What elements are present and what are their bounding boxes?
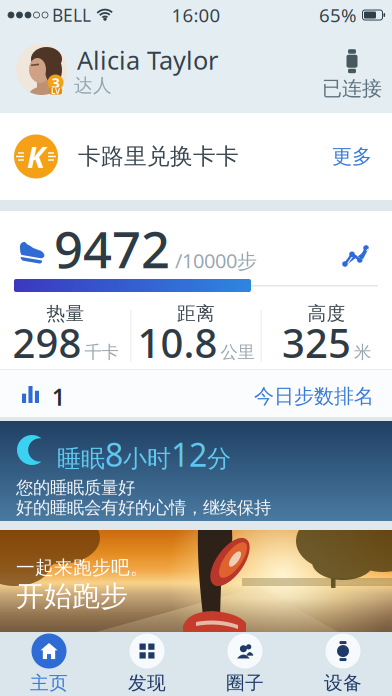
button[interactable]: 设备 (294, 632, 392, 696)
staticText: Alicia Taylor (77, 43, 218, 77)
staticText: 今日步数排名 (254, 384, 374, 409)
staticText: 设备 (324, 671, 362, 694)
staticText: 好的睡眠会有好的心情，继续保持 (16, 497, 271, 518)
button[interactable]: 睡眠详情 (0, 421, 392, 521)
staticText: 开始跑步 (16, 579, 128, 613)
staticText: LV (51, 86, 60, 96)
staticText: 分 (207, 444, 231, 473)
staticText: 睡眠 (57, 444, 105, 473)
button[interactable]: K (0, 113, 392, 200)
staticText: 圈子 (226, 671, 264, 694)
button[interactable]: 个人资料 (0, 30, 260, 113)
staticText: 10.8 (137, 316, 217, 369)
staticText: 距离 (177, 302, 215, 325)
staticText: K (27, 137, 45, 176)
staticText: 您的睡眠质量好 (16, 477, 135, 498)
staticText: 公里 (220, 342, 254, 363)
button[interactable]: 开始跑步 (0, 530, 392, 632)
staticText: 更多 (332, 144, 372, 169)
staticText: 米 (354, 342, 371, 363)
staticText: 16:00 (171, 3, 220, 27)
staticText: 达人 (74, 74, 112, 97)
staticText: 小时 (123, 444, 171, 473)
staticText: /10000步 (175, 247, 257, 274)
button[interactable]: 主页 (0, 632, 98, 696)
staticText: 12 (171, 433, 207, 475)
button[interactable]: 已连接的设备 (317, 44, 387, 106)
staticText: BELL (52, 3, 91, 26)
staticText: 一起来跑步吧。 (16, 556, 149, 579)
staticText: 千卡 (84, 342, 118, 363)
staticText: 热量 (46, 302, 84, 325)
staticText: 卡路里兑换卡卡 (78, 143, 239, 170)
staticText: 1 (52, 382, 65, 412)
staticText: 65% (319, 3, 357, 27)
staticText: 298 (12, 316, 81, 369)
staticText: 发现 (128, 671, 166, 694)
staticText: 8 (105, 433, 123, 475)
staticText: 已连接 (322, 76, 382, 101)
button[interactable]: 今日步数排名 (0, 369, 392, 417)
button[interactable]: 发现 (98, 632, 196, 696)
staticText: 主页 (30, 671, 68, 694)
staticText: 9472 (54, 215, 170, 282)
staticText: 高度 (307, 302, 345, 325)
staticText: 325 (282, 316, 351, 369)
staticText: 3 (51, 73, 59, 92)
button[interactable]: 圈子 (196, 632, 294, 696)
